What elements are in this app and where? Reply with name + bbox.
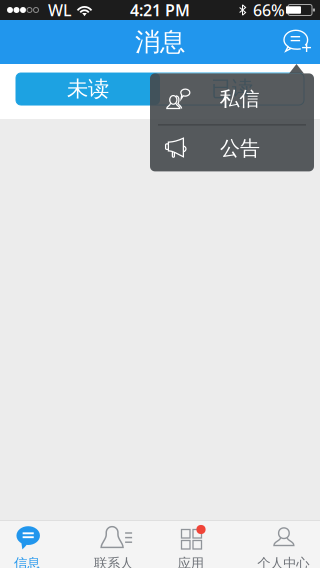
- button[interactable]: 信息: [0, 521, 80, 568]
- button[interactable]: 个人中心: [240, 521, 320, 568]
- staticText: 未读: [67, 76, 109, 102]
- button[interactable]: 已读: [160, 73, 304, 105]
- staticText: 4:21 PM: [130, 0, 190, 21]
- staticText: 已读: [211, 76, 253, 102]
- staticText: 信息: [14, 555, 40, 568]
- button[interactable]: 私信: [150, 73, 314, 124]
- staticText: 消息: [135, 26, 185, 57]
- staticText: WL: [48, 0, 72, 21]
- button[interactable]: 应用: [160, 521, 240, 568]
- staticText: 公告: [220, 136, 260, 161]
- button[interactable]: 联系人: [80, 521, 160, 568]
- staticText: 联系人: [94, 555, 133, 568]
- staticText: 私信: [219, 87, 259, 111]
- staticText: 个人中心: [257, 555, 309, 568]
- staticText: 66%: [253, 0, 285, 21]
- button[interactable]: New message: [274, 20, 320, 64]
- button[interactable]: 未读: [16, 73, 160, 105]
- staticText: 应用: [178, 555, 204, 568]
- button[interactable]: 公告: [150, 125, 314, 171]
